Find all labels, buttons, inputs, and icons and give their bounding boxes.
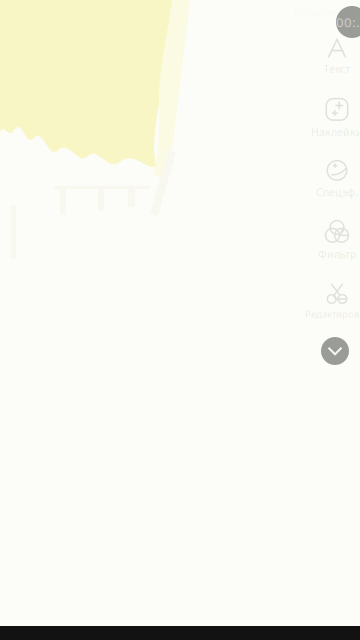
button[interactable]: Фильтр — [305, 210, 360, 271]
button[interactable]: Свернуть панель — [321, 337, 349, 365]
staticText: Редактировать — [305, 308, 360, 320]
staticText: 00:00 — [336, 13, 360, 31]
staticText: Спецэф. — [316, 185, 358, 199]
button[interactable]: Редактировать — [305, 271, 360, 332]
button[interactable]: Спецэф. — [305, 149, 360, 210]
staticText: Наклейки — [311, 125, 360, 139]
staticText: Текст — [323, 61, 350, 76]
button[interactable]: Текст — [305, 27, 360, 88]
button[interactable]: Наклейки — [305, 88, 360, 149]
button[interactable]: 00:00 — [336, 6, 360, 38]
staticText: Фильтр — [318, 247, 356, 261]
